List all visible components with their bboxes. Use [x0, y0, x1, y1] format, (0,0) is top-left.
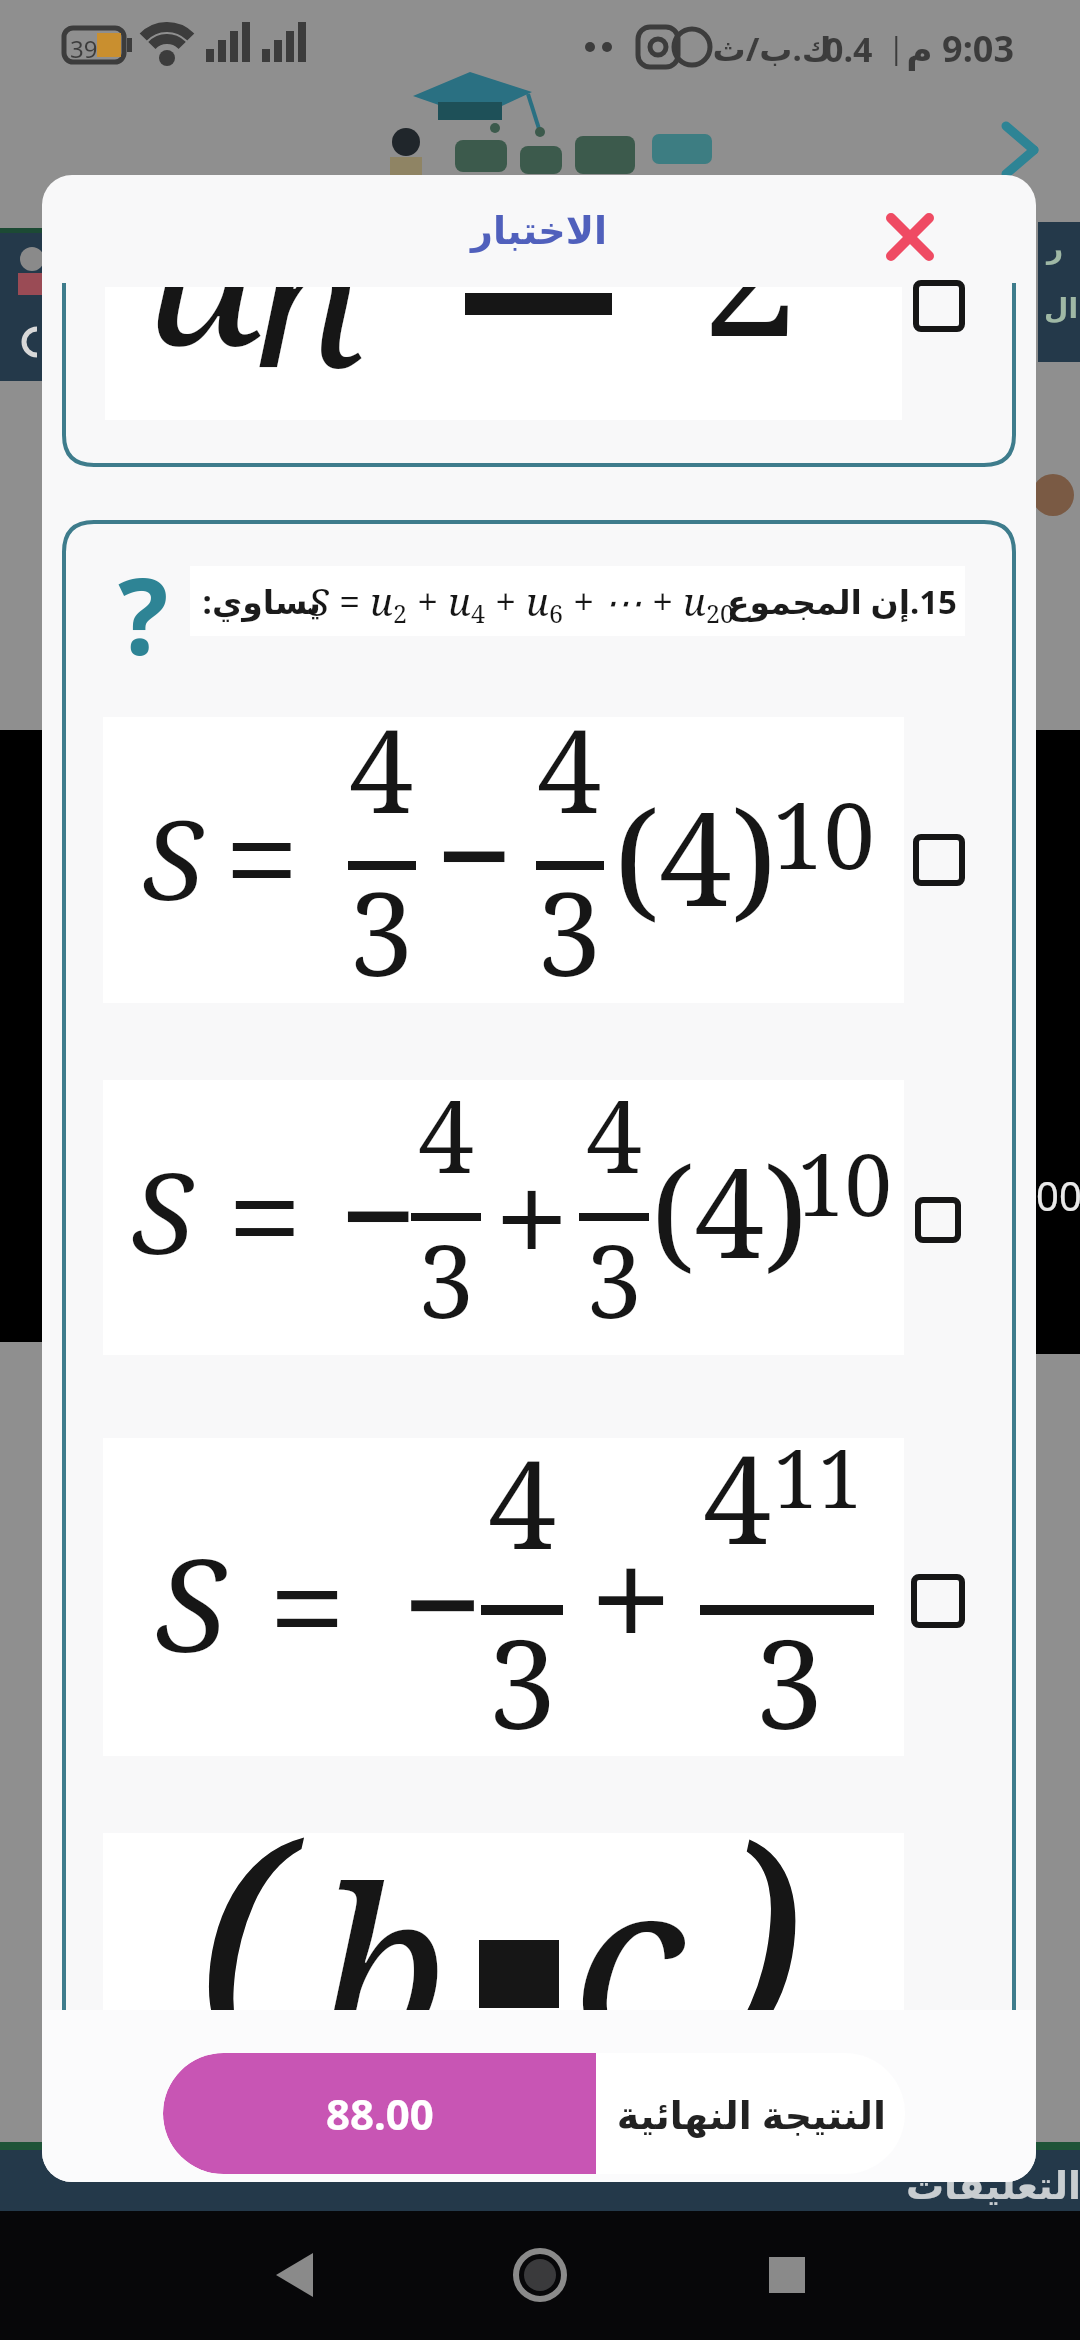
staticText: 4	[471, 596, 485, 630]
staticText: c	[573, 1833, 686, 2114]
button[interactable]: S	[103, 717, 904, 1003]
staticText: 00	[1036, 1168, 1080, 1222]
staticText: +	[589, 1494, 673, 1698]
staticText: 39	[70, 32, 98, 65]
staticText: (4)	[651, 1124, 808, 1294]
staticText: S	[156, 1515, 226, 1689]
staticText: الاختبار	[471, 209, 607, 253]
staticText: 15.إن المجموع	[726, 579, 957, 624]
staticText: =	[227, 1123, 303, 1307]
button[interactable]	[915, 1197, 961, 1243]
staticText: ?	[118, 543, 169, 686]
staticText: (4)	[614, 767, 777, 944]
staticText: u	[144, 287, 264, 403]
staticText: 20	[706, 596, 734, 630]
staticText: −	[402, 1506, 484, 1697]
staticText: (	[198, 1833, 288, 2111]
staticText: 3	[418, 1211, 474, 1347]
staticText: +	[494, 1124, 570, 1308]
staticText: −	[339, 1121, 418, 1305]
staticText: |	[888, 27, 905, 68]
staticText: =	[268, 1509, 347, 1700]
staticText: 3	[349, 853, 414, 1010]
staticText: S	[308, 575, 329, 627]
staticText: =	[224, 765, 300, 949]
staticText: + ⋯ + u	[563, 575, 706, 627]
staticText: −	[435, 761, 514, 945]
staticText: 3	[488, 1599, 557, 1765]
staticText: + u	[407, 575, 471, 627]
staticText: b	[318, 1833, 448, 2122]
staticText: النتيجة النهائية	[616, 2088, 886, 2140]
staticText: ال	[1044, 292, 1078, 325]
staticText: 10	[772, 771, 875, 896]
button[interactable]	[1000, 118, 1044, 182]
staticText: ك.ب/ث	[712, 26, 832, 71]
staticText: n	[251, 287, 365, 420]
button[interactable]: 88.00	[163, 2053, 905, 2174]
button[interactable]: S	[103, 1080, 904, 1355]
staticText: يساوي:	[202, 579, 321, 624]
staticText: + u	[485, 575, 549, 627]
staticText: 4	[488, 1419, 557, 1585]
staticText: S	[143, 782, 203, 932]
staticText: 88.00	[326, 2085, 434, 2142]
staticText: ر	[1046, 232, 1063, 265]
staticText: 0.4	[824, 26, 873, 72]
staticText: 4	[586, 1066, 642, 1202]
staticText: 4	[349, 690, 414, 847]
button[interactable]	[887, 214, 933, 260]
staticText: 11	[773, 1422, 863, 1531]
staticText: 9:03 م	[906, 24, 1014, 73]
button[interactable]: (	[103, 1833, 904, 2123]
button[interactable]	[911, 1574, 965, 1628]
staticText: S	[132, 1134, 193, 1287]
staticText: 3	[755, 1599, 824, 1765]
staticText: 4	[418, 1066, 474, 1202]
staticText: 10	[797, 1125, 893, 1241]
button[interactable]	[720, 2211, 1080, 2340]
button[interactable]	[913, 834, 965, 886]
staticText: )	[713, 1833, 803, 2111]
staticText: 3	[537, 853, 602, 1010]
staticText: 2	[701, 287, 799, 387]
staticText: التعليقات	[905, 2164, 1080, 2208]
staticText: = u	[329, 575, 393, 627]
staticText: 4	[703, 1414, 772, 1580]
button[interactable]: S	[103, 1438, 904, 1756]
staticText: 6	[549, 596, 563, 630]
staticText: 2	[393, 596, 407, 630]
button[interactable]	[0, 2211, 360, 2340]
button[interactable]	[360, 2211, 720, 2340]
staticText: 3	[586, 1211, 642, 1347]
staticText: 4	[537, 690, 602, 847]
button[interactable]	[913, 280, 965, 332]
